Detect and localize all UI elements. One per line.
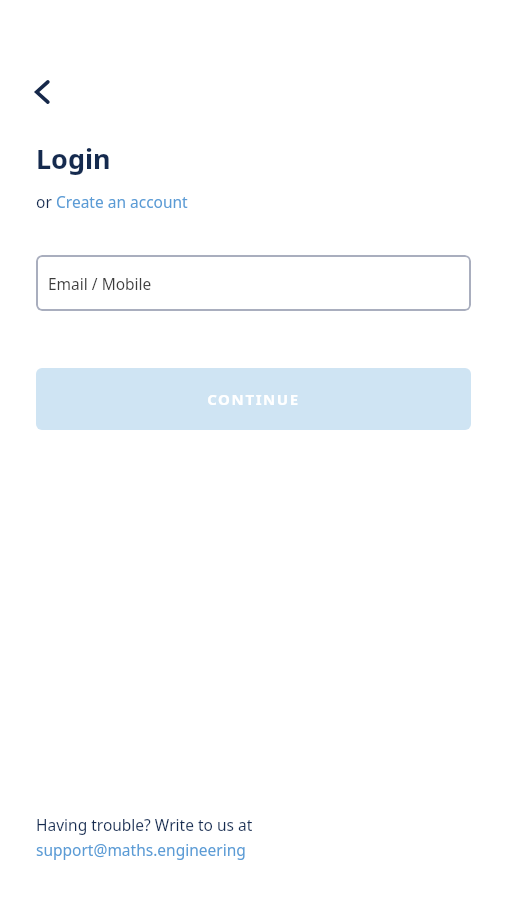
- staticText: Login: [36, 140, 111, 177]
- staticText: or: [36, 191, 56, 212]
- staticText: Having trouble? Write to us at: [36, 814, 253, 835]
- button[interactable]: Email / Mobile: [36, 255, 471, 311]
- staticText: Create an account: [56, 191, 188, 212]
- button[interactable]: support@maths.engineering: [36, 839, 246, 860]
- staticText: CONTINUE: [207, 389, 300, 409]
- staticText: support@maths.engineering: [36, 839, 246, 860]
- button[interactable]: CONTINUE: [36, 368, 471, 430]
- button[interactable]: Create an account: [56, 191, 188, 212]
- button[interactable]: Back: [22, 72, 62, 112]
- staticText: Email / Mobile: [48, 273, 152, 294]
